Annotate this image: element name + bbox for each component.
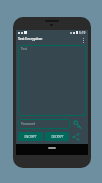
button[interactable]: Password (18, 119, 70, 129)
button[interactable]: Text (18, 45, 86, 116)
button[interactable]: More options (80, 37, 87, 44)
button[interactable]: Show password (72, 119, 82, 129)
staticText: DECRYPT (51, 135, 64, 139)
staticText: Password (21, 122, 35, 126)
staticText: Text Encryption (18, 36, 43, 40)
staticText: 5:19 (79, 31, 86, 35)
staticText: Text (21, 47, 27, 51)
button[interactable]: ENCRYPT (18, 132, 43, 141)
button[interactable]: Share (71, 132, 80, 141)
button[interactable]: DECRYPT (45, 132, 69, 141)
staticText: ENCRYPT (24, 135, 37, 139)
